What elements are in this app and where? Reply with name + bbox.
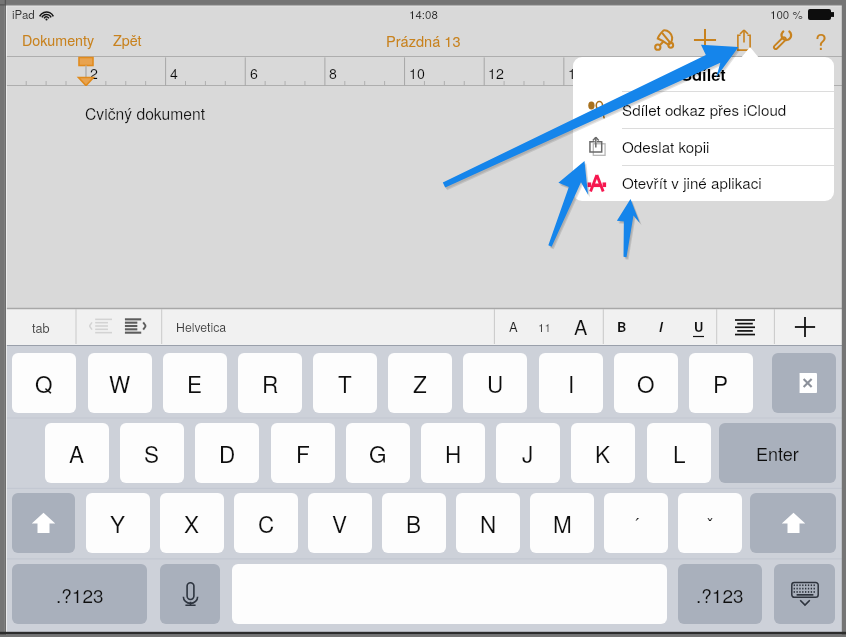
button[interactable]: .?123 bbox=[12, 564, 147, 624]
button[interactable]: D bbox=[195, 423, 259, 483]
button[interactable]: ˇ bbox=[678, 493, 742, 553]
button[interactable]: A bbox=[45, 423, 109, 483]
staticText: Sdílet odkaz přes iCloud bbox=[622, 99, 787, 121]
staticText: ? bbox=[815, 26, 827, 54]
button[interactable] bbox=[160, 564, 220, 624]
button[interactable]: Insert bbox=[789, 308, 821, 345]
button[interactable]: Brush bbox=[651, 27, 679, 53]
button[interactable]: A bbox=[564, 308, 598, 345]
button[interactable]: tab bbox=[0, 308, 76, 345]
staticText: B bbox=[406, 507, 422, 539]
button[interactable]: C bbox=[234, 493, 298, 553]
button[interactable]: E bbox=[163, 353, 227, 413]
staticText: A bbox=[574, 312, 588, 341]
button[interactable] bbox=[772, 353, 836, 413]
staticText: X bbox=[184, 507, 200, 539]
staticText: 2 bbox=[90, 63, 98, 83]
staticText: Helvetica bbox=[176, 318, 227, 336]
button[interactable] bbox=[774, 564, 835, 624]
staticText: O bbox=[637, 367, 655, 399]
button[interactable]: V bbox=[308, 493, 372, 553]
button[interactable]: H bbox=[421, 423, 485, 483]
staticText: .?123 bbox=[696, 581, 744, 608]
staticText: 6 bbox=[250, 63, 258, 83]
button[interactable]: Align bbox=[729, 308, 761, 345]
button[interactable]: W bbox=[88, 353, 152, 413]
staticText: V bbox=[332, 507, 348, 539]
button[interactable] bbox=[750, 493, 836, 553]
button[interactable]: Zpět bbox=[108, 24, 147, 56]
button[interactable]: X bbox=[160, 493, 224, 553]
button[interactable]: U bbox=[683, 308, 713, 345]
staticText: N bbox=[480, 507, 497, 539]
staticText: .?123 bbox=[56, 581, 104, 608]
button[interactable]: Z bbox=[388, 353, 452, 413]
button[interactable]: Increase indent bbox=[123, 317, 147, 335]
button[interactable]: L bbox=[647, 423, 711, 483]
button[interactable]: A bbox=[499, 308, 527, 345]
staticText: Y bbox=[110, 507, 126, 539]
button[interactable]: ´ bbox=[604, 493, 668, 553]
button[interactable] bbox=[12, 493, 75, 553]
button[interactable]: J bbox=[496, 423, 560, 483]
staticText: 14:08 bbox=[409, 6, 438, 22]
staticText: L bbox=[673, 437, 686, 469]
button[interactable]: Helvetica bbox=[162, 308, 494, 345]
staticText: Cvičný dokument bbox=[85, 102, 206, 124]
button[interactable]: T bbox=[313, 353, 377, 413]
staticText: 8 bbox=[329, 63, 337, 83]
staticText: 12 bbox=[488, 63, 504, 83]
button[interactable]: K bbox=[571, 423, 635, 483]
staticText: R bbox=[262, 367, 279, 399]
button[interactable]: M bbox=[530, 493, 594, 553]
staticText: U bbox=[694, 317, 704, 336]
button[interactable]: S bbox=[120, 423, 184, 483]
button[interactable]: Q bbox=[12, 353, 76, 413]
button[interactable]: Share bbox=[730, 27, 758, 53]
button[interactable]: Dokumenty bbox=[17, 24, 100, 56]
button[interactable]: P bbox=[689, 353, 753, 413]
button[interactable]: Y bbox=[86, 493, 150, 553]
button[interactable]: O bbox=[614, 353, 678, 413]
button[interactable]: U bbox=[463, 353, 527, 413]
staticText: Zpět bbox=[113, 30, 142, 50]
button[interactable]: I bbox=[539, 353, 603, 413]
staticText: 10 bbox=[409, 63, 425, 83]
staticText: K bbox=[595, 437, 611, 469]
staticText: A bbox=[509, 317, 518, 336]
button[interactable]: 11 bbox=[530, 308, 558, 345]
staticText: Sdílet bbox=[681, 62, 726, 86]
button[interactable]: G bbox=[346, 423, 410, 483]
staticText: Dokumenty bbox=[22, 30, 95, 50]
button[interactable]: F bbox=[271, 423, 335, 483]
staticText: P bbox=[713, 367, 729, 399]
button[interactable]: I bbox=[646, 308, 676, 345]
staticText: C bbox=[258, 507, 275, 539]
button[interactable]: Insert bbox=[691, 27, 719, 53]
staticText: F bbox=[296, 437, 310, 469]
button[interactable]: Decrease indent bbox=[88, 317, 112, 335]
staticText: 14 bbox=[568, 63, 584, 83]
staticText: J bbox=[522, 437, 534, 469]
staticText: ˇ bbox=[707, 510, 713, 536]
staticText: Prázdná 13 bbox=[386, 30, 461, 51]
button[interactable]: Enter bbox=[719, 423, 836, 483]
button[interactable]: B bbox=[382, 493, 446, 553]
staticText: A bbox=[69, 437, 85, 469]
staticText: W bbox=[109, 367, 131, 399]
button[interactable]: Help bbox=[807, 26, 835, 54]
staticText: B bbox=[617, 317, 627, 336]
button[interactable]: R bbox=[238, 353, 302, 413]
button[interactable]: N bbox=[456, 493, 520, 553]
staticText: S bbox=[144, 437, 160, 469]
button[interactable]: B bbox=[607, 308, 637, 345]
button[interactable]: .?123 bbox=[678, 564, 762, 624]
button[interactable]: Tools bbox=[768, 27, 796, 53]
button[interactable]: Otevřít v jiné aplikaci bbox=[573, 165, 834, 201]
staticText: Odeslat kopii bbox=[622, 136, 710, 158]
staticText: Q bbox=[35, 367, 53, 399]
button[interactable]: Sdílet odkaz přes iCloud bbox=[573, 91, 834, 128]
button[interactable]: Odeslat kopii bbox=[573, 128, 834, 165]
staticText: iPad bbox=[12, 6, 35, 22]
